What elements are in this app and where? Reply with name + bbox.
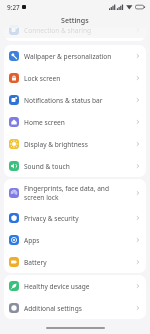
staticText: Fingerprints, face data, and screen lock bbox=[24, 184, 114, 202]
staticText: Settings bbox=[61, 15, 89, 25]
button[interactable]: Notifications & status bar bbox=[4, 89, 146, 111]
button[interactable]: Connection & sharing bbox=[4, 19, 146, 41]
staticText: Battery bbox=[24, 258, 47, 267]
button[interactable]: Battery bbox=[4, 251, 146, 273]
button[interactable]: Wallpaper & personalization bbox=[4, 45, 146, 67]
staticText: Notifications & status bar bbox=[24, 96, 103, 105]
button[interactable]: Sound & touch bbox=[4, 155, 146, 177]
staticText: Lock screen bbox=[24, 74, 61, 83]
staticText: 9:27 bbox=[7, 3, 20, 12]
button[interactable]: Fingerprints, face data, and screen lock bbox=[4, 179, 146, 207]
staticText: Additional settings bbox=[24, 304, 82, 313]
staticText: Display & brightness bbox=[24, 140, 88, 149]
button[interactable]: Privacy & security bbox=[4, 207, 146, 229]
staticText: Privacy & security bbox=[24, 214, 79, 223]
button[interactable]: Display & brightness bbox=[4, 133, 146, 155]
button[interactable]: Lock screen bbox=[4, 67, 146, 89]
staticText: Healthy device usage bbox=[24, 282, 90, 291]
staticText: Home screen bbox=[24, 118, 65, 127]
staticText: Sound & touch bbox=[24, 162, 70, 171]
button[interactable]: Home screen bbox=[4, 111, 146, 133]
staticText: Connection & sharing bbox=[24, 26, 92, 35]
button[interactable]: Additional settings bbox=[4, 297, 146, 319]
staticText: Wallpaper & personalization bbox=[24, 52, 112, 61]
button[interactable]: Apps bbox=[4, 229, 146, 251]
button[interactable]: Healthy device usage bbox=[4, 275, 146, 297]
staticText: Apps bbox=[24, 236, 40, 245]
